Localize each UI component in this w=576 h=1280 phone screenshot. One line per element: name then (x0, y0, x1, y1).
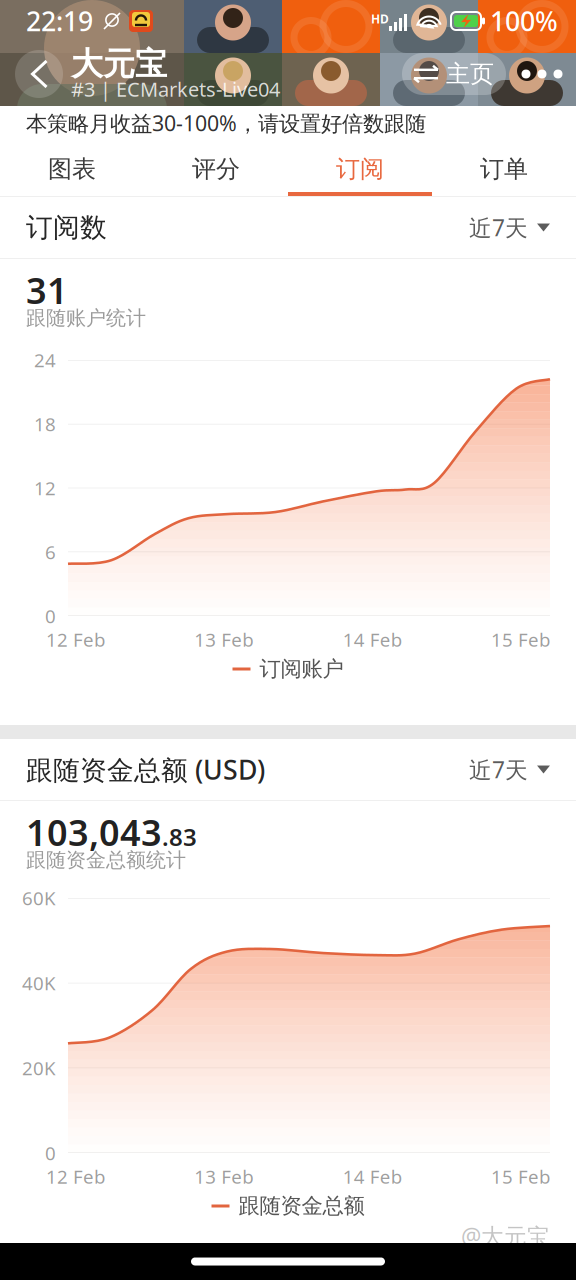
button[interactable]: 近7天 (469, 207, 550, 247)
staticText: 订阅 (336, 154, 384, 184)
staticText: 6 (45, 540, 56, 564)
staticText: 大元宝 (71, 44, 167, 84)
staticText: 主页 (446, 59, 494, 89)
staticText: 近7天 (469, 754, 528, 784)
button[interactable]: 评分 (144, 140, 288, 196)
staticText: HD (371, 11, 389, 27)
staticText: 15 Feb (491, 1164, 550, 1189)
staticText: #3 | ECMarkets-Live04 (71, 76, 280, 102)
button[interactable]: 图表 (0, 140, 144, 196)
staticText: 103,043 (26, 808, 162, 856)
button[interactable]: Back (15, 50, 63, 98)
staticText: 14 Feb (343, 1164, 402, 1189)
staticText: .83 (162, 821, 197, 853)
staticText: 0 (45, 1141, 56, 1165)
staticText: 24 (34, 348, 56, 372)
staticText: 100% (490, 3, 558, 39)
staticText: 跟随资金总额 (USD) (26, 752, 265, 787)
staticText: 订阅数 (26, 211, 107, 244)
staticText: 22:19 (26, 3, 93, 39)
staticText: 14 Feb (343, 627, 402, 652)
staticText: 本策略月收益30-100%，请设置好倍数跟随 (26, 109, 426, 137)
staticText: @大元宝 (461, 1221, 550, 1251)
button[interactable]: 订单 (432, 140, 576, 196)
staticText: 18 (34, 412, 56, 436)
staticText: 近7天 (469, 212, 528, 242)
button[interactable]: 近7天 (469, 749, 550, 789)
staticText: 12 Feb (46, 627, 105, 652)
staticText: 订阅账户 (259, 656, 343, 682)
button[interactable]: More options (514, 53, 570, 95)
button[interactable]: 主页 (402, 53, 506, 95)
staticText: 跟随账户统计 (26, 306, 146, 330)
staticText: 12 (34, 476, 56, 500)
staticText: 0 (45, 604, 56, 628)
staticText: 评分 (192, 154, 240, 184)
staticText: 40K (22, 971, 56, 995)
staticText: 图表 (48, 154, 96, 184)
staticText: 13 Feb (194, 1164, 253, 1189)
staticText: 12 Feb (46, 1164, 105, 1189)
staticText: 跟随资金总额统计 (26, 848, 186, 872)
staticText: 13 Feb (194, 627, 253, 652)
staticText: 20K (22, 1056, 56, 1080)
staticText: 订单 (480, 154, 528, 184)
button[interactable]: 订阅 (288, 140, 432, 196)
staticText: 15 Feb (491, 627, 550, 652)
staticText: 60K (22, 886, 56, 910)
staticText: 31 (26, 266, 68, 314)
staticText: 跟随资金总额 (238, 1193, 364, 1219)
